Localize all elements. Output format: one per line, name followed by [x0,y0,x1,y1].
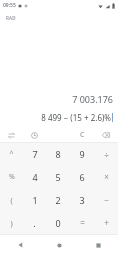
staticText: 4 [32,171,38,183]
button[interactable]: ) [0,211,23,234]
button[interactable]: × [94,165,118,188]
staticText: ) [10,218,13,228]
staticText: 2 [55,194,61,206]
button[interactable]: 1 [23,188,46,211]
staticText: 9 [79,148,85,160]
staticText: − [104,194,109,205]
button[interactable]: 3 [70,188,94,211]
button[interactable]: Recent apps [79,234,118,256]
button[interactable]: 9 [70,143,94,165]
button[interactable]: Backspace [94,128,118,142]
staticText: ÷ [104,149,109,160]
staticText: . [33,217,36,229]
button[interactable]: % [0,165,23,188]
staticText: 5 [55,171,61,183]
staticText: C [80,130,85,140]
button[interactable]: Unit converter [0,128,23,142]
button[interactable]: − [94,188,118,211]
button[interactable]: 5 [46,165,70,188]
button[interactable]: RAD [5,14,17,22]
staticText: 8 [55,148,61,160]
button[interactable]: = [70,211,94,234]
button[interactable]: 7 [23,143,46,165]
button[interactable]: 8 [46,143,70,165]
staticText: 8 499 − (15 + 2.6)% [41,112,111,123]
button[interactable]: 2 [46,188,70,211]
staticText: + [104,217,109,228]
staticText: 7 003.176 [72,93,113,105]
staticText: 1 [32,194,38,206]
button[interactable]: ÷ [94,143,118,165]
staticText: 09:55 [3,2,16,9]
button[interactable]: 0 [46,211,70,234]
button[interactable]: Back [0,234,40,256]
staticText: ( [10,195,13,205]
staticText: = [80,217,85,228]
button[interactable]: C [70,128,94,142]
button[interactable]: History [23,128,46,142]
staticText: RAD [6,15,16,21]
button[interactable]: ^ [0,143,23,165]
button[interactable]: 4 [23,165,46,188]
button[interactable]: Home [40,234,79,256]
button[interactable]: ( [0,188,23,211]
button[interactable]: 6 [70,165,94,188]
staticText: 3 [79,194,85,206]
staticText: × [104,171,109,182]
staticText: ^ [9,149,14,159]
staticText: 6 [79,171,85,183]
button[interactable]: . [23,211,46,234]
staticText: 7 [32,148,38,160]
staticText: % [9,172,15,182]
button[interactable]: + [94,211,118,234]
staticText: 0 [55,217,61,229]
